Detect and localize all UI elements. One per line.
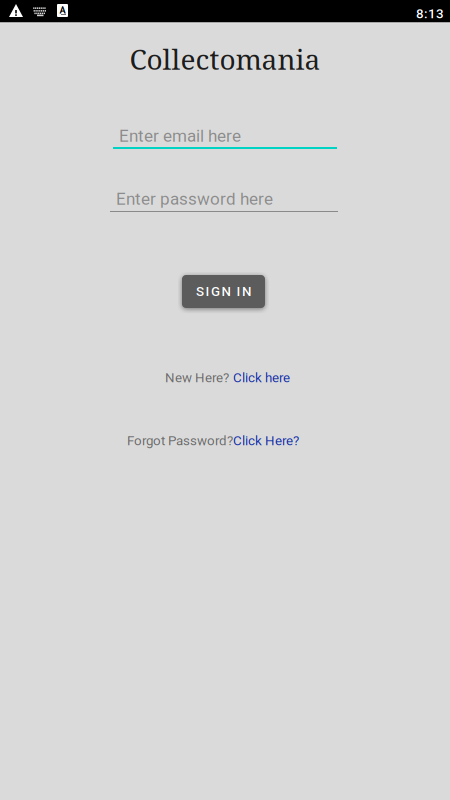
- staticText: Click Here?: [233, 433, 299, 449]
- staticText: SIGN IN: [196, 284, 251, 299]
- staticText: 8:13: [416, 6, 444, 22]
- button[interactable]: SIGN IN: [182, 275, 265, 308]
- staticText: Collectomania: [129, 40, 320, 78]
- button[interactable]: Forgot Password?: [127, 433, 299, 449]
- staticText: Forgot Password?: [127, 433, 233, 449]
- staticText: New Here?: [165, 370, 229, 386]
- staticText: Enter password here: [116, 189, 273, 209]
- button[interactable]: New Here?: [165, 370, 290, 386]
- staticText: Click here: [233, 370, 290, 386]
- staticText: A: [60, 5, 66, 16]
- staticText: Enter email here: [119, 126, 241, 146]
